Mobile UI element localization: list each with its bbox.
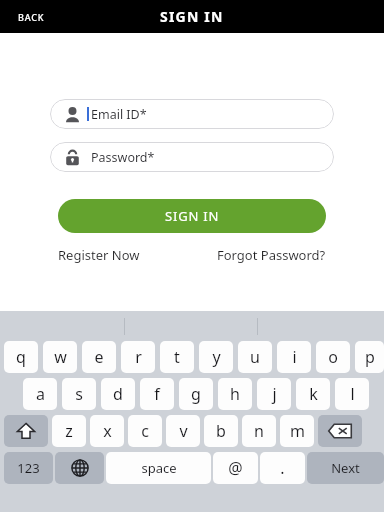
button[interactable]: l [335,378,369,410]
button[interactable]: x [90,415,124,447]
button[interactable]: g [179,378,213,410]
button[interactable]: c [128,415,162,447]
button[interactable]: e [82,341,116,373]
staticText: SIGN IN [165,207,220,225]
button[interactable]: . [260,452,305,484]
staticText: m [290,420,305,442]
staticText: l [350,383,355,405]
staticText: v [179,420,188,442]
button[interactable]: u [238,341,272,373]
button[interactable]: Change keyboard language [55,452,104,484]
button[interactable]: v [166,415,200,447]
button[interactable]: r [121,341,155,373]
staticText: k [309,383,318,405]
staticText: x [103,420,112,442]
button[interactable]: 123 [4,452,53,484]
button[interactable]: w [43,341,77,373]
staticText: f [154,383,160,405]
staticText: a [36,383,45,405]
staticText: BACK [18,11,45,23]
staticText: s [75,383,83,405]
button[interactable]: Shift [4,415,48,447]
staticText: z [65,420,73,442]
button[interactable]: d [101,378,135,410]
staticText: i [292,346,297,368]
button[interactable]: space [106,452,211,484]
button[interactable]: Password* [50,142,334,172]
button[interactable]: t [160,341,194,373]
button[interactable]: Register Now [58,243,140,267]
staticText: Password* [91,149,155,166]
staticText: t [174,346,180,368]
button[interactable]: m [280,415,314,447]
staticText: d [113,383,123,405]
button[interactable]: y [199,341,233,373]
staticText: . [280,457,285,479]
button[interactable]: f [140,378,174,410]
staticText: SIGN IN [160,7,224,26]
button[interactable]: k [296,378,330,410]
staticText: u [250,346,260,368]
button[interactable]: SIGN IN [58,199,326,233]
button[interactable]: a [23,378,57,410]
button[interactable]: i [277,341,311,373]
staticText: p [365,346,375,368]
staticText: space [141,459,177,477]
staticText: q [16,346,26,368]
staticText: Email ID* [91,106,147,123]
staticText: o [328,346,338,368]
button[interactable]: @ [213,452,258,484]
button[interactable]: Next [307,452,384,484]
staticText: 123 [17,459,40,477]
button[interactable]: Email ID* [50,99,334,129]
button[interactable]: b [204,415,238,447]
button[interactable]: o [316,341,350,373]
button[interactable]: z [52,415,86,447]
button[interactable]: BACK [12,7,51,27]
button[interactable]: j [257,378,291,410]
button[interactable]: p [355,341,384,373]
staticText: n [254,420,264,442]
staticText: c [141,420,149,442]
staticText: j [272,383,277,405]
button[interactable]: Backspace [318,415,362,447]
button[interactable]: n [242,415,276,447]
button[interactable]: s [62,378,96,410]
button[interactable]: q [4,341,38,373]
staticText: r [135,346,142,368]
button[interactable]: h [218,378,252,410]
staticText: Forgot Password? [217,246,326,264]
staticText: b [216,420,226,442]
staticText: @ [228,457,243,479]
staticText: Next [331,459,360,477]
staticText: Register Now [58,246,140,264]
staticText: w [54,346,67,368]
button[interactable]: Forgot Password? [217,243,326,267]
staticText: e [94,346,104,368]
staticText: y [212,346,221,368]
staticText: g [191,383,201,405]
staticText: h [230,383,240,405]
